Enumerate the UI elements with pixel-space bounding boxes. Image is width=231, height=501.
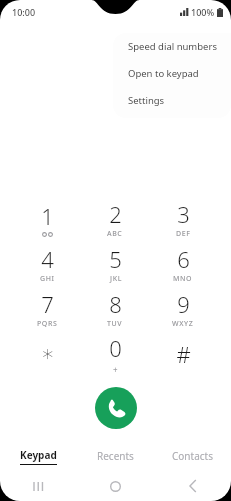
staticText: WXYZ	[172, 319, 194, 329]
staticText: MNO	[173, 274, 193, 284]
button[interactable]: 8	[81, 286, 149, 331]
staticText: Contacts	[172, 449, 213, 463]
staticText: JKL	[110, 274, 122, 284]
staticText: TUV	[107, 319, 123, 329]
staticText: 1	[41, 201, 54, 231]
button[interactable]: Recents	[77, 443, 154, 469]
staticText: Recents	[97, 449, 134, 463]
button[interactable]: #	[149, 331, 217, 376]
staticText: Keypad	[20, 448, 57, 462]
button[interactable]: Back	[154, 471, 231, 501]
staticText: 3	[177, 199, 190, 229]
staticText: #	[176, 339, 191, 369]
staticText: DEF	[176, 229, 191, 239]
staticText: 2	[109, 199, 122, 229]
button[interactable]: Keypad	[0, 443, 77, 469]
button[interactable]: 1	[14, 196, 81, 241]
button[interactable]: Home	[77, 471, 154, 501]
button[interactable]: Recent apps	[0, 471, 77, 501]
button[interactable]: Speed dial numbers	[113, 33, 231, 60]
staticText: PQRS	[37, 319, 58, 329]
staticText: GHI	[40, 274, 55, 284]
button[interactable]: 6	[149, 241, 217, 286]
staticText: Speed dial numbers	[128, 40, 217, 53]
staticText: 0	[109, 333, 122, 363]
staticText: 6	[177, 244, 190, 274]
staticText: 10:00	[12, 6, 36, 18]
staticText: 8	[109, 289, 122, 319]
staticText: 4	[41, 244, 54, 274]
button[interactable]: 5	[81, 241, 149, 286]
staticText: Settings	[128, 94, 165, 107]
button[interactable]: Settings	[113, 87, 231, 114]
button[interactable]: 0	[81, 331, 149, 376]
button[interactable]: ∗	[14, 331, 81, 376]
staticText: Open to keypad	[128, 67, 199, 80]
staticText: 100%	[191, 6, 215, 18]
button[interactable]: Call	[95, 387, 137, 429]
staticText: ∗	[41, 341, 55, 367]
button[interactable]: 2	[81, 196, 149, 241]
staticText: 7	[41, 289, 54, 319]
staticText: +	[113, 364, 118, 375]
staticText: 9	[177, 289, 190, 319]
staticText: 5	[109, 244, 122, 274]
button[interactable]: 9	[149, 286, 217, 331]
button[interactable]: 3	[149, 196, 217, 241]
staticText: ABC	[107, 229, 123, 239]
button[interactable]: 4	[14, 241, 81, 286]
button[interactable]: Contacts	[154, 443, 231, 469]
button[interactable]: 7	[14, 286, 81, 331]
button[interactable]: Open to keypad	[113, 60, 231, 87]
